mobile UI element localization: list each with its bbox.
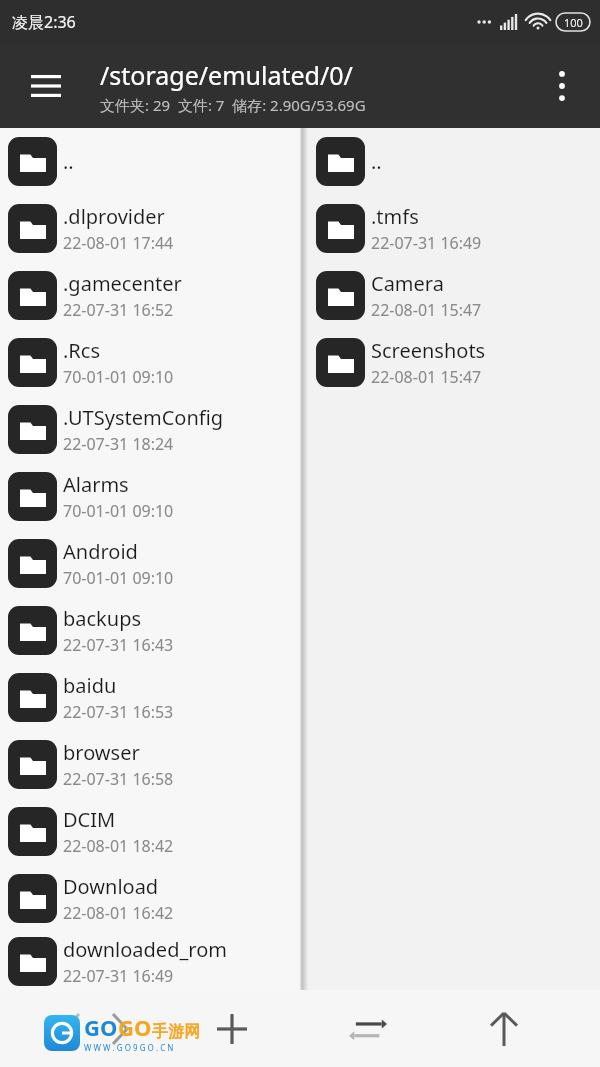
button[interactable]: Back	[56, 996, 136, 1062]
staticText: .dlprovider	[63, 203, 165, 230]
button[interactable]: Switch pane	[328, 996, 408, 1062]
staticText: Camera	[371, 270, 444, 297]
button[interactable]: .Rcs	[0, 329, 299, 396]
button[interactable]: Camera	[308, 262, 600, 329]
staticText: 手游网	[152, 1022, 200, 1042]
staticText: downloaded_rom	[63, 936, 227, 963]
staticText: 22-08-01 17:44	[63, 232, 174, 254]
staticText: 100	[564, 15, 583, 30]
staticText: 22-07-31 16:53	[63, 701, 174, 723]
staticText: GO	[118, 1012, 152, 1042]
staticText: 70-01-01 09:10	[63, 567, 174, 589]
button[interactable]: ..	[0, 128, 299, 195]
button[interactable]: Alarms	[0, 463, 299, 530]
staticText: Android	[63, 538, 138, 565]
button[interactable]: Android	[0, 530, 299, 597]
staticText: .tmfs	[371, 203, 419, 230]
staticText: 22-07-31 16:58	[63, 768, 174, 790]
staticText: DCIM	[63, 806, 116, 833]
staticText: 22-07-31 16:49	[63, 965, 174, 987]
staticText: 22-07-31 16:52	[63, 299, 174, 321]
button[interactable]: backups	[0, 597, 299, 664]
button[interactable]: .gamecenter	[0, 262, 299, 329]
staticText: 22-08-01 15:47	[371, 299, 482, 321]
button[interactable]: downloaded_rom	[0, 932, 299, 990]
staticText: baidu	[63, 672, 117, 699]
staticText: 文件夹: 29 文件: 7 储存: 2.90G/53.69G	[100, 95, 366, 115]
staticText: 22-07-31 16:49	[371, 232, 482, 254]
button[interactable]: .tmfs	[308, 195, 600, 262]
button[interactable]: More options	[534, 58, 590, 114]
staticText: 22-07-31 18:24	[63, 433, 174, 455]
button[interactable]: .dlprovider	[0, 195, 299, 262]
staticText: W W W . G O 9 G O . C N	[84, 1042, 174, 1053]
staticText: 凌晨2:36	[12, 11, 76, 33]
button[interactable]: Download	[0, 865, 299, 932]
staticText: backups	[63, 605, 142, 632]
staticText: GO	[84, 1012, 118, 1042]
staticText: Download	[63, 873, 159, 900]
staticText: browser	[63, 739, 140, 766]
button[interactable]: Up	[464, 996, 544, 1062]
button[interactable]: browser	[0, 731, 299, 798]
staticText: /storage/emulated/0/	[100, 58, 353, 92]
button[interactable]: Menu	[18, 58, 74, 114]
button[interactable]: Screenshots	[308, 329, 600, 396]
button[interactable]: ..	[308, 128, 600, 195]
staticText: .UTSystemConfig	[63, 404, 224, 431]
staticText: 70-01-01 09:10	[63, 366, 174, 388]
staticText: 22-08-01 16:42	[63, 902, 174, 924]
button[interactable]: baidu	[0, 664, 299, 731]
staticText: Alarms	[63, 471, 129, 498]
staticText: .Rcs	[63, 337, 100, 364]
staticText: .gamecenter	[63, 270, 182, 297]
staticText: 22-08-01 15:47	[371, 366, 482, 388]
staticText: 22-08-01 18:42	[63, 835, 174, 857]
staticText: Screenshots	[371, 337, 486, 364]
staticText: 22-07-31 16:43	[63, 634, 174, 656]
staticText: ..	[371, 148, 382, 175]
button[interactable]: DCIM	[0, 798, 299, 865]
staticText: 70-01-01 09:10	[63, 500, 174, 522]
button[interactable]: New	[192, 996, 272, 1062]
staticText: ..	[63, 148, 74, 175]
button[interactable]: .UTSystemConfig	[0, 396, 299, 463]
